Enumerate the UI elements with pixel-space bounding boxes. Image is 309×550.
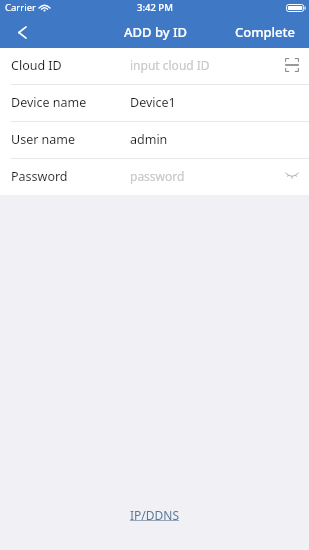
staticText: password <box>130 168 185 184</box>
staticText: 3:42 PM <box>137 1 173 14</box>
staticText: Complete <box>235 23 295 41</box>
staticText: Cloud ID <box>11 57 62 74</box>
staticText: User name <box>11 131 76 148</box>
button[interactable]: Complete <box>225 18 309 46</box>
button[interactable]: Scan QR code <box>277 53 307 77</box>
button[interactable]: User name <box>0 122 309 158</box>
button[interactable]: Show password <box>277 164 307 188</box>
staticText: Device name <box>11 94 87 111</box>
staticText: Carrier <box>5 1 36 14</box>
staticText: admin <box>130 131 168 148</box>
button[interactable]: Cloud ID <box>0 48 309 84</box>
staticText: Device1 <box>130 94 176 111</box>
button[interactable]: Back <box>7 18 37 46</box>
staticText: input cloud ID <box>130 57 210 73</box>
staticText: ADD by ID <box>124 23 188 41</box>
staticText: Password <box>11 168 68 185</box>
staticText: IP/DDNS <box>130 507 180 523</box>
button[interactable]: Device name <box>0 85 309 121</box>
button[interactable]: Password <box>0 159 309 195</box>
button[interactable]: IP/DDNS <box>124 503 186 527</box>
